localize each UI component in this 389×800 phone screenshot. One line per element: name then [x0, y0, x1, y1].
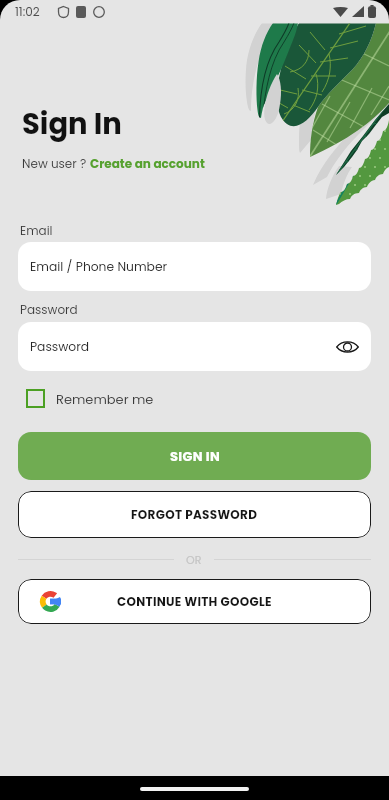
staticText: OR [186, 552, 202, 567]
button[interactable]: Create an account [90, 155, 205, 172]
staticText: New user ? [22, 155, 90, 172]
button[interactable]: SIGN IN [18, 432, 371, 480]
button[interactable]: Email / Phone Number [18, 242, 371, 291]
staticText: SIGN IN [170, 447, 220, 465]
staticText: 11:02 [15, 3, 40, 20]
staticText: Email / Phone Number [30, 258, 168, 275]
staticText: Sign In [22, 104, 122, 145]
staticText: Remember me [56, 390, 154, 408]
staticText: Password [30, 338, 90, 355]
button[interactable]: Remember me [26, 389, 154, 408]
button[interactable]: CONTINUE WITH GOOGLE [18, 579, 371, 624]
staticText: Create an account [90, 155, 205, 172]
button[interactable]: Password [18, 322, 371, 371]
staticText: Email [20, 222, 53, 239]
staticText: FORGOT PASSWORD [131, 506, 258, 523]
button[interactable]: Show password [329, 329, 365, 365]
staticText: Password [20, 301, 78, 318]
staticText: CONTINUE WITH GOOGLE [117, 593, 272, 610]
button[interactable]: FORGOT PASSWORD [18, 491, 371, 538]
